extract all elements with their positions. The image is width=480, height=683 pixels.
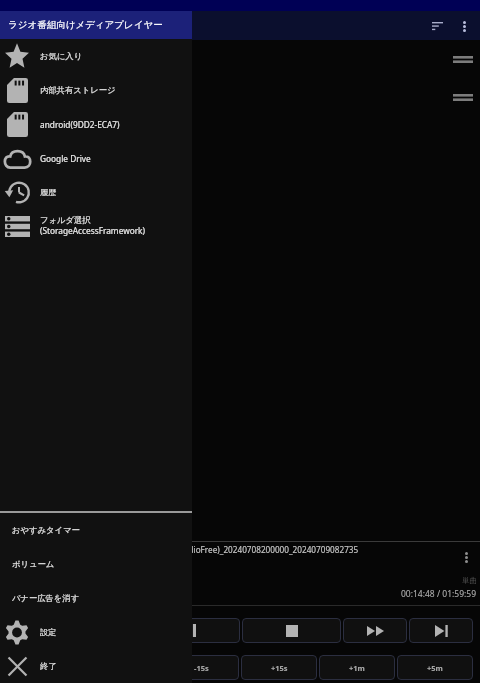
staticText: フォルダ選択 (StorageAccessFramework) <box>40 215 146 237</box>
other: Reorder <box>453 94 473 101</box>
staticText: お気に入り <box>40 51 83 61</box>
staticText: Google Drive <box>40 153 91 164</box>
staticText: 設定 <box>40 627 57 637</box>
button[interactable]: Pause <box>141 618 240 643</box>
staticText: おやすみタイマー <box>12 525 80 535</box>
staticText: 00:14:48 / 01:59:59 <box>401 588 477 600</box>
staticText: +15s <box>271 663 288 673</box>
button[interactable]: 終了 <box>0 649 192 683</box>
button[interactable]: おやすみタイマー <box>0 513 192 547</box>
button[interactable]: Previous <box>6 618 71 643</box>
staticText: /storage/emulated/0/Music/Recordings241/… <box>8 544 359 555</box>
button[interactable]: Google Drive <box>0 141 192 175</box>
staticText: 単曲 <box>462 576 477 585</box>
staticText: +5m <box>427 663 443 673</box>
staticText: バナー広告を消す <box>12 593 80 603</box>
button[interactable]: +15s <box>241 655 317 680</box>
staticText: -15s <box>194 663 209 673</box>
staticText: ボリューム <box>12 559 55 569</box>
staticText: 内部共有ストレージ <box>40 85 116 95</box>
button[interactable]: android(9DD2-ECA7) <box>0 107 192 141</box>
other: Reorder <box>453 56 473 63</box>
staticText: -5m <box>37 663 52 673</box>
staticText: 履歴 <box>40 187 57 197</box>
staticText: 終了 <box>40 661 57 671</box>
button[interactable]: バナー広告を消す <box>0 581 192 615</box>
button[interactable]: More options <box>451 13 477 39</box>
button[interactable]: 設定 <box>0 615 192 649</box>
button[interactable]: -15s <box>163 655 239 680</box>
button[interactable]: +5m <box>397 655 473 680</box>
staticText: +1m <box>349 663 365 673</box>
staticText: android(9DD2-ECA7) <box>40 119 120 130</box>
button[interactable]: ボリューム <box>0 547 192 581</box>
button[interactable]: 履歴 <box>0 175 192 209</box>
staticText: ラジオ番組向けメディアプレイヤー <box>8 19 163 31</box>
button[interactable]: 内部共有ストレージ <box>0 73 192 107</box>
button[interactable]: +1m <box>319 655 395 680</box>
button[interactable]: -5m <box>6 655 83 680</box>
button[interactable]: お気に入り <box>0 39 192 73</box>
button[interactable]: フォルダ選択 (StorageAccessFramework) <box>0 209 192 243</box>
button[interactable]: Sort <box>423 12 451 40</box>
button[interactable]: Track options <box>456 546 476 568</box>
button[interactable]: Fast forward <box>343 618 407 643</box>
button[interactable]: Next <box>409 618 473 643</box>
button[interactable]: Stop <box>242 618 341 643</box>
